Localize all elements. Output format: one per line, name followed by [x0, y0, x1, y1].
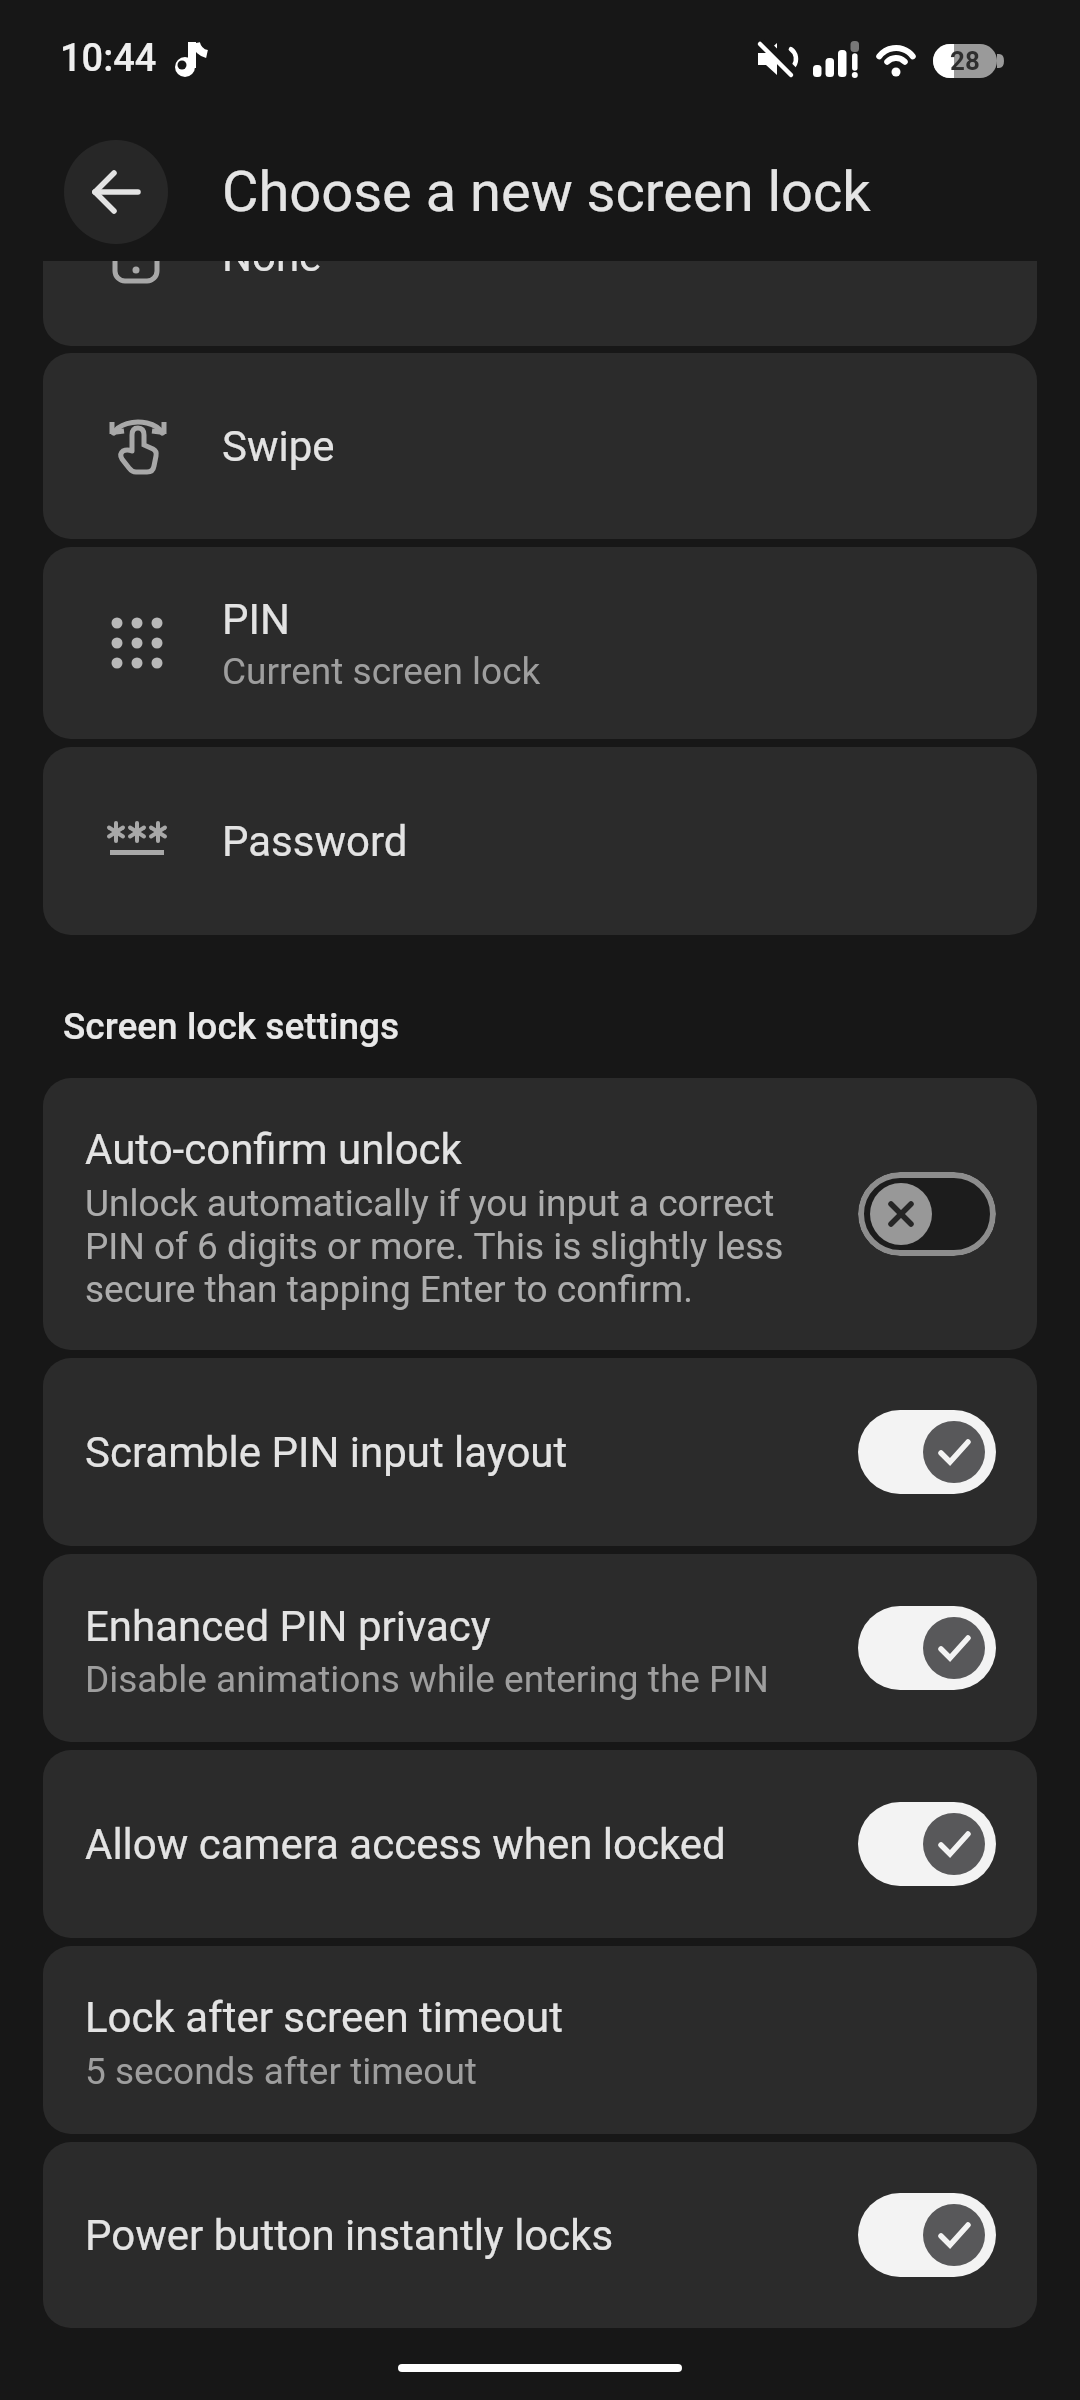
button[interactable]	[858, 1410, 996, 1494]
staticText: 10:44	[60, 36, 157, 81]
button[interactable]: Scramble PIN input layout	[43, 1358, 1037, 1546]
button[interactable]: PIN	[43, 547, 1037, 739]
button[interactable]	[858, 1172, 996, 1256]
button[interactable]: Allow camera access when locked	[43, 1750, 1037, 1938]
button[interactable]: Lock after screen timeout	[43, 1946, 1037, 2134]
button[interactable]: Swipe	[43, 353, 1037, 539]
button[interactable]	[858, 1606, 996, 1690]
staticText: Enhanced PIN privacy	[85, 1602, 491, 1651]
button[interactable]	[858, 1802, 996, 1886]
staticText: Unlock automatically if you input a corr…	[85, 1182, 784, 1311]
button[interactable]	[858, 2193, 996, 2277]
staticText: Password	[222, 817, 408, 866]
button[interactable]: None	[43, 261, 1037, 346]
button[interactable]	[64, 140, 168, 244]
button[interactable]: Password	[43, 747, 1037, 935]
staticText: 5 seconds after timeout	[85, 2050, 477, 2093]
staticText: Current screen lock	[222, 650, 541, 693]
staticText: Disable animations while entering the PI…	[85, 1658, 769, 1701]
button[interactable]: Enhanced PIN privacy	[43, 1554, 1037, 1742]
staticText: Lock after screen timeout	[85, 1993, 563, 2042]
staticText: None	[222, 261, 322, 281]
staticText: Swipe	[222, 422, 335, 471]
staticText: PIN	[222, 595, 290, 644]
staticText: Power button instantly locks	[85, 2211, 614, 2260]
button[interactable]: Power button instantly locks	[43, 2142, 1037, 2328]
staticText: Auto-confirm unlock	[85, 1125, 462, 1174]
button[interactable]: Auto-confirm unlock	[43, 1078, 1037, 1350]
staticText: Allow camera access when locked	[85, 1820, 726, 1869]
staticText: 28	[950, 46, 980, 76]
staticText: Screen lock settings	[63, 1005, 400, 1048]
staticText: Scramble PIN input layout	[85, 1428, 568, 1477]
staticText: Choose a new screen lock	[222, 159, 871, 225]
